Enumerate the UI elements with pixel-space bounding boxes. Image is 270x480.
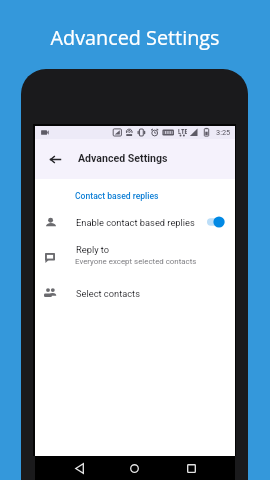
staticText: Advanced Settings xyxy=(78,152,168,164)
button[interactable]: Back xyxy=(66,456,92,480)
staticText: 3:25 xyxy=(216,128,231,137)
button[interactable]: Recent apps xyxy=(178,456,204,480)
staticText: Select contacts xyxy=(76,288,140,299)
staticText: Everyone except selected contacts xyxy=(75,257,197,266)
button[interactable]: Home xyxy=(121,456,147,480)
staticText: Contact based replies xyxy=(75,191,159,201)
button[interactable]: Navigate up xyxy=(44,148,66,170)
staticText: Enable contact based replies xyxy=(76,217,195,228)
button[interactable]: Select contacts xyxy=(35,283,235,310)
button[interactable]: Reply to xyxy=(35,241,235,275)
button[interactable]: Enable contact based replies xyxy=(35,210,235,237)
button[interactable]: Contact based replies xyxy=(35,187,235,205)
staticText: Reply to xyxy=(76,244,110,255)
staticText: Advanced Settings xyxy=(0,24,270,51)
